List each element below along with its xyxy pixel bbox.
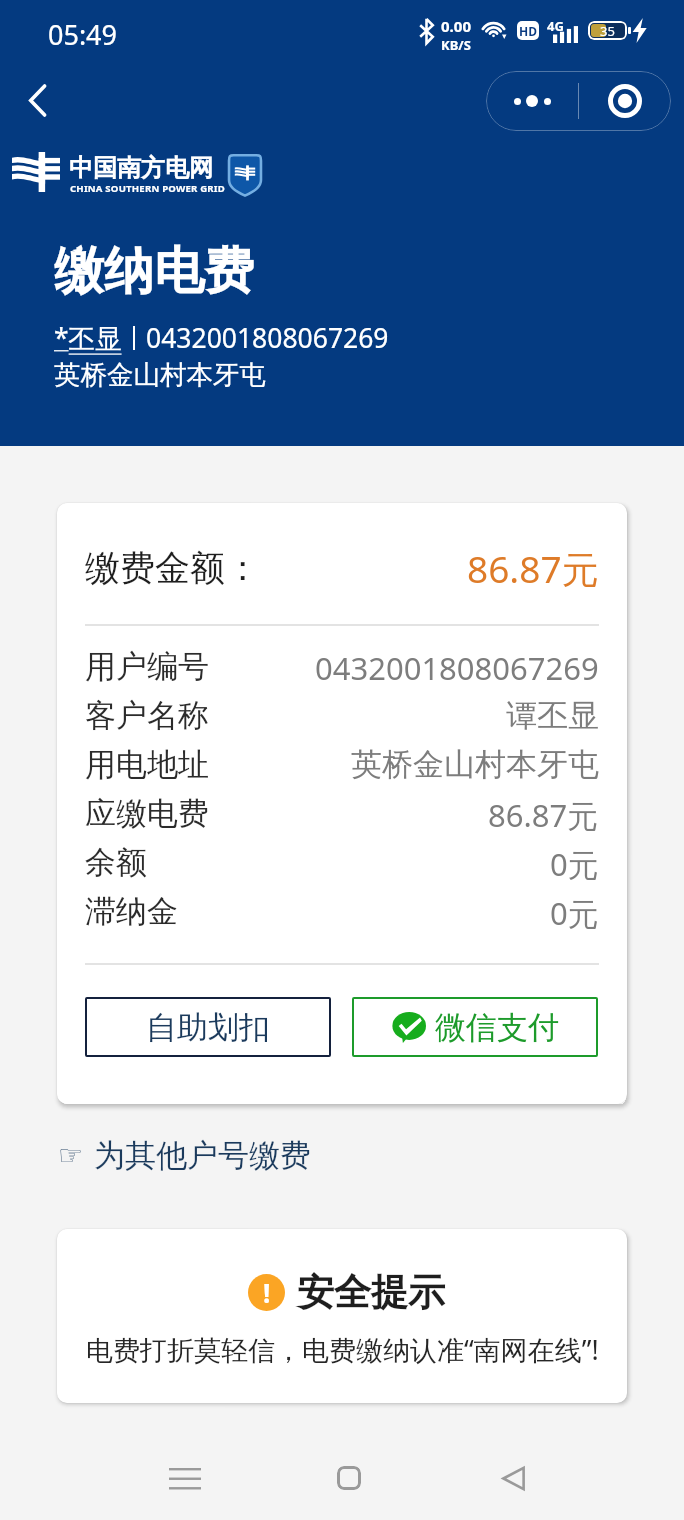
staticText: 缴纳电费 <box>54 240 254 303</box>
staticText: 英桥金山村本牙屯 <box>351 745 599 784</box>
staticText: 缴费金额： <box>85 546 260 590</box>
button[interactable]: More <box>486 71 578 131</box>
staticText: 05:49 <box>48 16 118 53</box>
staticText: 0432001808067269 <box>146 320 389 356</box>
staticText: 安全提示 <box>297 1269 445 1316</box>
button[interactable]: Home <box>318 1447 380 1509</box>
staticText: 用户编号 <box>85 647 209 686</box>
staticText: 微信支付 <box>435 1008 559 1047</box>
staticText: 自助划扣 <box>146 1008 270 1047</box>
staticText: 0元 <box>550 892 599 934</box>
staticText: 谭丕显 <box>506 696 599 735</box>
staticText: 86.87元 <box>488 794 599 836</box>
staticText: 英桥金山村本牙屯 <box>54 358 266 391</box>
staticText: 客户名称 <box>85 696 209 735</box>
button[interactable]: Close <box>579 71 671 131</box>
staticText: 4G <box>547 17 564 35</box>
button[interactable]: Back <box>9 72 65 128</box>
staticText: 用电地址 <box>85 745 209 784</box>
button[interactable]: 自助划扣 <box>85 997 331 1057</box>
staticText: HD <box>519 23 537 39</box>
staticText: 应缴电费 <box>85 794 209 833</box>
staticText: *丕显 <box>54 320 122 356</box>
staticText: KB/S <box>441 36 471 54</box>
staticText: 0元 <box>550 843 599 885</box>
button[interactable]: 微信支付 <box>352 997 598 1057</box>
staticText: 电费打折莫轻信，电费缴纳认准“南网在线”! <box>86 1331 599 1368</box>
button[interactable]: Recent apps <box>154 1447 216 1509</box>
staticText: 86.87元 <box>467 543 599 594</box>
staticText: 0432001808067269 <box>315 647 599 689</box>
button[interactable]: Back <box>482 1447 544 1509</box>
staticText: CHINA SOUTHERN POWER GRID <box>70 182 226 195</box>
staticText: 中国南方电网 <box>69 153 213 183</box>
staticText: 滞纳金 <box>85 892 178 931</box>
staticText: 35 <box>600 22 615 40</box>
button[interactable]: ☞ <box>50 1132 319 1179</box>
staticText: ☞ <box>58 1139 84 1172</box>
staticText: ! <box>263 1275 271 1310</box>
staticText: 余额 <box>85 843 147 882</box>
staticText: 为其他户号缴费 <box>94 1136 311 1175</box>
staticText: 0.00 <box>441 16 471 36</box>
